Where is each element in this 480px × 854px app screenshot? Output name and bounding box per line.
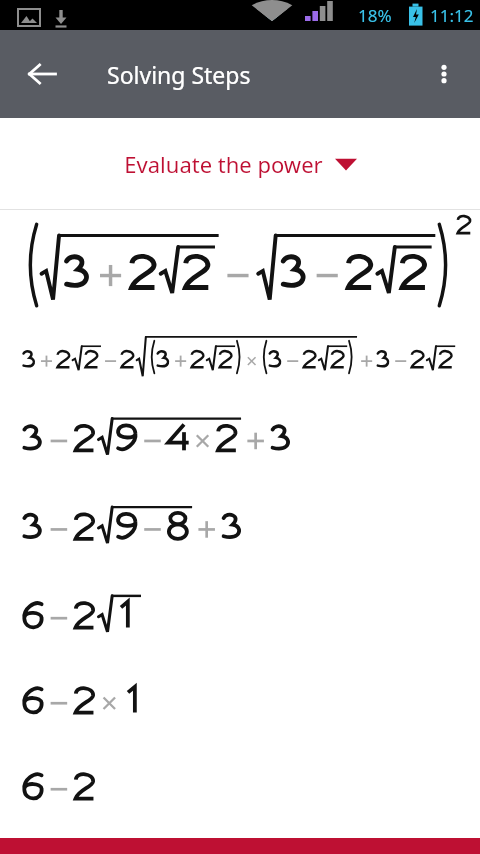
staticText: Solving Steps bbox=[107, 59, 251, 90]
button[interactable]: More options bbox=[417, 47, 471, 101]
staticText: Evaluate the power bbox=[124, 149, 323, 179]
staticText: 11:12 bbox=[430, 4, 474, 27]
staticText: 18% bbox=[358, 4, 392, 27]
button[interactable]: Evaluate the power bbox=[0, 118, 480, 209]
button[interactable]: Back bbox=[14, 46, 70, 102]
